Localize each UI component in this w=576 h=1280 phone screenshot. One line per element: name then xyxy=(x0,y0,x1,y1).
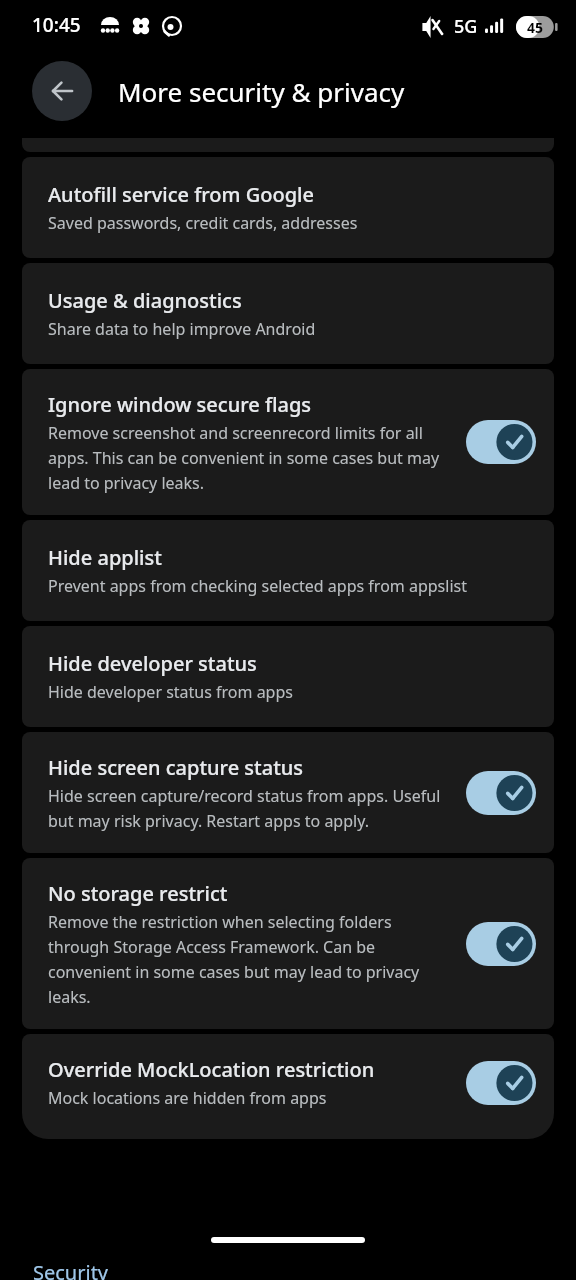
staticText: Usage & diagnostics xyxy=(48,287,242,314)
staticText: Hide developer status from apps xyxy=(48,681,293,703)
staticText: 10:45 xyxy=(32,12,81,38)
staticText: Saved passwords, credit cards, addresses xyxy=(48,212,358,234)
staticText: 5G xyxy=(454,14,478,39)
button[interactable]: Toggle setting xyxy=(466,771,536,815)
staticText: Share data to help improve Android xyxy=(48,318,316,340)
staticText: No storage restrict xyxy=(48,880,228,907)
staticText: Hide screen capture/record status from a… xyxy=(48,785,452,831)
button[interactable]: Hide developer status xyxy=(22,626,554,727)
button[interactable]: Override MockLocation restriction xyxy=(22,1034,554,1139)
button[interactable]: Toggle setting xyxy=(466,922,536,966)
button[interactable]: Ignore window secure flags xyxy=(22,369,554,515)
button[interactable]: No storage restrict xyxy=(22,858,554,1029)
staticText: Override MockLocation restriction xyxy=(48,1056,375,1083)
button[interactable]: Usage & diagnostics xyxy=(22,263,554,364)
staticText: Remove the restriction when selecting fo… xyxy=(48,911,452,1007)
button[interactable]: Hide applist xyxy=(22,520,554,621)
staticText: Mock locations are hidden from apps xyxy=(48,1087,327,1109)
staticText: Hide screen capture status xyxy=(48,754,304,781)
staticText: Hide applist xyxy=(48,544,162,571)
staticText: Prevent apps from checking selected apps… xyxy=(48,575,467,597)
button[interactable]: Hide screen capture status xyxy=(22,732,554,853)
staticText: Autofill service from Google xyxy=(48,181,314,208)
button[interactable]: Security xyxy=(33,1259,109,1280)
button[interactable]: Autofill service from Google xyxy=(22,157,554,258)
staticText: More security & privacy xyxy=(118,74,405,109)
staticText: 45 xyxy=(527,18,544,37)
button[interactable]: Back xyxy=(32,61,92,121)
button[interactable]: Toggle setting xyxy=(466,420,536,464)
button[interactable]: Toggle setting xyxy=(466,1061,536,1105)
staticText: Remove screenshot and screenrecord limit… xyxy=(48,422,452,493)
staticText: Hide developer status xyxy=(48,650,257,677)
staticText: Ignore window secure flags xyxy=(48,391,312,418)
